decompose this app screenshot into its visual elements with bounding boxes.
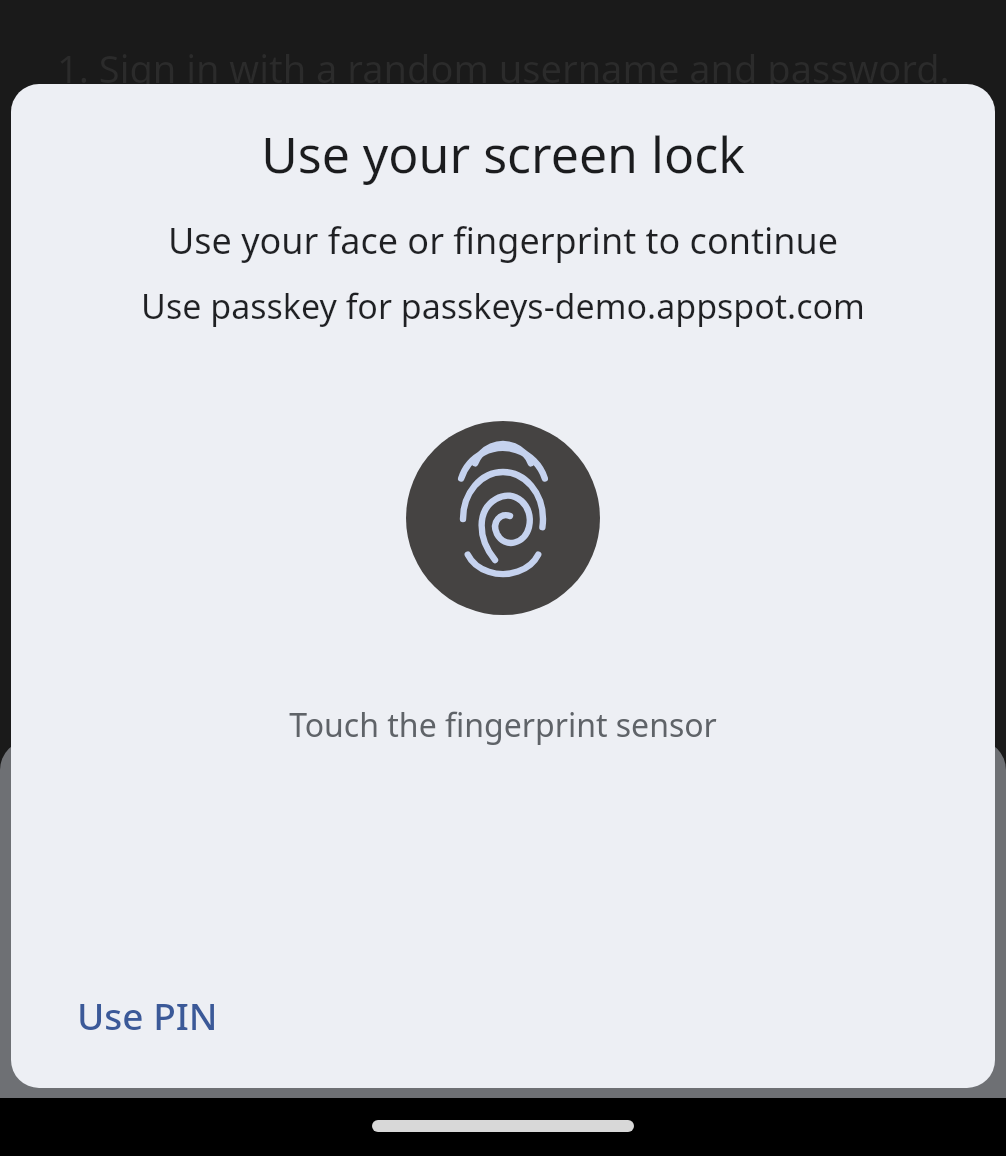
- staticText: Use passkey for passkeys-demo.appspot.co…: [11, 283, 995, 329]
- button[interactable]: Use PIN: [55, 976, 240, 1054]
- staticText: Touch the fingerprint sensor: [11, 703, 995, 747]
- staticText: 1. Sign in with a random username and pa…: [57, 42, 950, 94]
- staticText: Use PIN: [77, 990, 218, 1040]
- button[interactable]: Fingerprint sensor: [406, 421, 600, 615]
- staticText: Use your screen lock: [11, 120, 995, 188]
- staticText: Use your face or fingerprint to continue: [11, 216, 995, 265]
